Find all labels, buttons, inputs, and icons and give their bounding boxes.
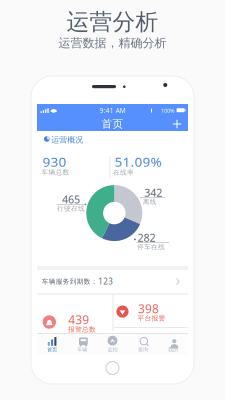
staticText: 车辆服务到期数： <box>42 277 98 286</box>
staticText: 342 <box>144 185 162 200</box>
staticText: 离线 <box>143 198 157 206</box>
staticText: 398 <box>138 300 159 316</box>
staticText: 51.09% <box>115 153 162 170</box>
button[interactable]: 车辆 <box>67 334 97 355</box>
staticText: 查询 <box>138 346 148 353</box>
staticText: 在线率 <box>113 168 134 177</box>
staticText: 监控 <box>107 346 117 353</box>
staticText: 运营数据，精确分析 <box>58 36 166 50</box>
staticText: 首页 <box>47 346 57 353</box>
staticText: 行驶在线 <box>57 204 85 213</box>
button[interactable]: 平台报警 <box>116 305 129 318</box>
staticText: 282 <box>137 230 155 245</box>
button[interactable]: 我的 <box>158 334 188 355</box>
staticText: 运营分析 <box>66 8 158 36</box>
staticText: 9:41 AM <box>99 106 125 115</box>
staticText: 123 <box>98 276 113 287</box>
staticText: 首页 <box>101 117 123 130</box>
staticText: 平台报警 <box>138 314 166 322</box>
staticText: 439 <box>68 311 89 327</box>
staticText: 465 <box>62 192 80 206</box>
staticText: 我的 <box>168 346 178 353</box>
staticText: 车辆 <box>77 346 87 353</box>
button[interactable]: 监控 <box>97 334 128 355</box>
staticText: 报警总数 <box>68 325 96 334</box>
staticText: 930 <box>43 153 67 170</box>
button[interactable]: 车辆服务到期数： <box>37 270 188 293</box>
staticText: 运营概况 <box>51 135 83 145</box>
staticText: 停车在线 <box>137 243 165 251</box>
button[interactable]: Add <box>169 117 185 131</box>
button[interactable]: 首页 <box>37 334 67 355</box>
staticText: 100% <box>161 107 174 114</box>
button[interactable]: 报警总数 <box>43 315 56 329</box>
button[interactable]: 查询 <box>128 334 158 355</box>
staticText: 车辆总数 <box>42 168 70 176</box>
